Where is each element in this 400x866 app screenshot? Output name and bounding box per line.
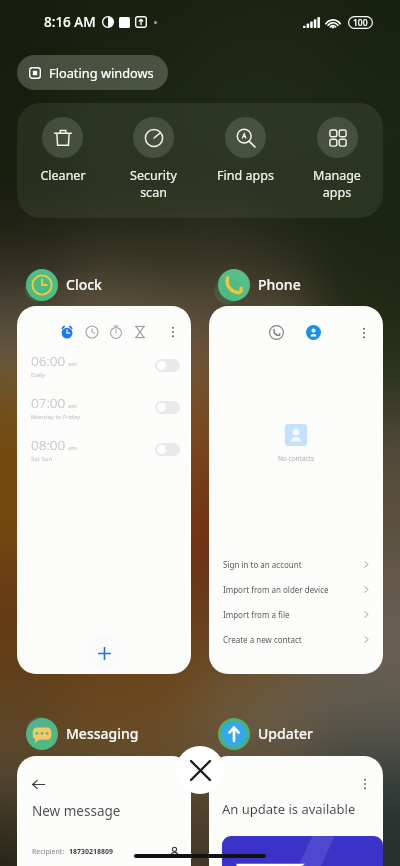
staticText: 07:00	[31, 394, 66, 412]
staticText: Recipient:	[32, 847, 65, 857]
staticText: Find apps	[217, 167, 274, 184]
staticText: Import from an older device	[223, 584, 329, 595]
button[interactable]: 06:00	[17, 306, 191, 674]
staticText: Manage apps	[313, 167, 361, 200]
staticText: Import from a file	[223, 609, 290, 620]
staticText: Clock	[66, 275, 102, 294]
staticText: No contacts	[278, 454, 315, 463]
staticText: Updater	[258, 724, 314, 743]
button[interactable]: Import from an older device	[209, 577, 383, 602]
button[interactable]: Updater	[218, 717, 314, 750]
button[interactable]: New message	[17, 756, 191, 866]
button[interactable]: Toggle alarm	[155, 359, 180, 372]
staticText: Phone	[258, 275, 301, 294]
staticText: New message	[32, 802, 121, 820]
button[interactable]: Messaging	[26, 717, 139, 750]
staticText: am	[68, 360, 77, 368]
staticText: Create a new contact	[223, 634, 302, 645]
staticText: am	[68, 402, 77, 410]
staticText: Daily	[31, 371, 45, 379]
button[interactable]: Cleaner	[17, 103, 108, 218]
staticText: Sat Sun	[31, 455, 53, 463]
button[interactable]: Find apps	[199, 103, 291, 218]
button[interactable]: Add alarm	[87, 636, 121, 670]
button[interactable]: Manage apps	[291, 103, 383, 218]
button[interactable]: Toggle alarm	[155, 443, 180, 456]
staticText: An update is available	[222, 800, 356, 818]
staticText: Monday to Friday	[31, 413, 81, 421]
staticText: Messaging	[66, 724, 139, 743]
staticText: 100	[353, 17, 368, 29]
staticText: 8:16 AM	[44, 13, 96, 31]
button[interactable]: Close all	[176, 746, 224, 794]
button[interactable]: Toggle alarm	[155, 401, 180, 414]
button[interactable]: An update is available	[209, 756, 383, 866]
staticText: Cleaner	[40, 167, 86, 184]
staticText: 06:00	[31, 352, 66, 370]
button[interactable]: Security scan	[108, 103, 199, 218]
button[interactable]: Floating windows	[17, 55, 168, 90]
staticText: 08:00	[31, 436, 66, 454]
button[interactable]: Create a new contact	[209, 627, 383, 652]
button[interactable]: Clock	[26, 268, 102, 301]
button[interactable]: 06:00	[17, 344, 191, 386]
button[interactable]: Phone	[218, 268, 301, 301]
staticText: am	[68, 444, 77, 452]
staticText: Floating windows	[49, 64, 154, 81]
button[interactable]: Import from a file	[209, 602, 383, 627]
staticText: Sign in to an account	[223, 559, 302, 570]
button[interactable]: 08:00	[17, 428, 191, 470]
button[interactable]: No contacts	[209, 306, 383, 674]
button[interactable]: 07:00	[17, 386, 191, 428]
button[interactable]: Sign in to an account	[209, 552, 383, 577]
staticText: 18730218809	[69, 847, 114, 857]
staticText: Security scan	[130, 167, 177, 200]
